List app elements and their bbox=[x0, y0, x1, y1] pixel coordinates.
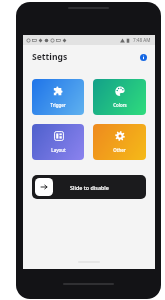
button[interactable]: Info bbox=[137, 51, 150, 64]
staticText: Settings bbox=[32, 51, 68, 63]
button[interactable]: Slide to disable bbox=[32, 175, 146, 199]
staticText: Layout bbox=[51, 147, 66, 153]
staticText: 7:48 AM bbox=[133, 37, 151, 43]
staticText: Slide to disable bbox=[70, 184, 109, 191]
button[interactable]: Slide to disable bbox=[35, 178, 53, 196]
staticText: Colors bbox=[113, 102, 127, 108]
button[interactable]: Layout bbox=[32, 124, 84, 160]
button[interactable]: Colors bbox=[93, 79, 146, 115]
staticText: Other bbox=[113, 147, 126, 153]
staticText: Trigger bbox=[50, 102, 66, 108]
button[interactable]: Other bbox=[93, 124, 146, 160]
button[interactable]: Trigger bbox=[32, 79, 84, 115]
